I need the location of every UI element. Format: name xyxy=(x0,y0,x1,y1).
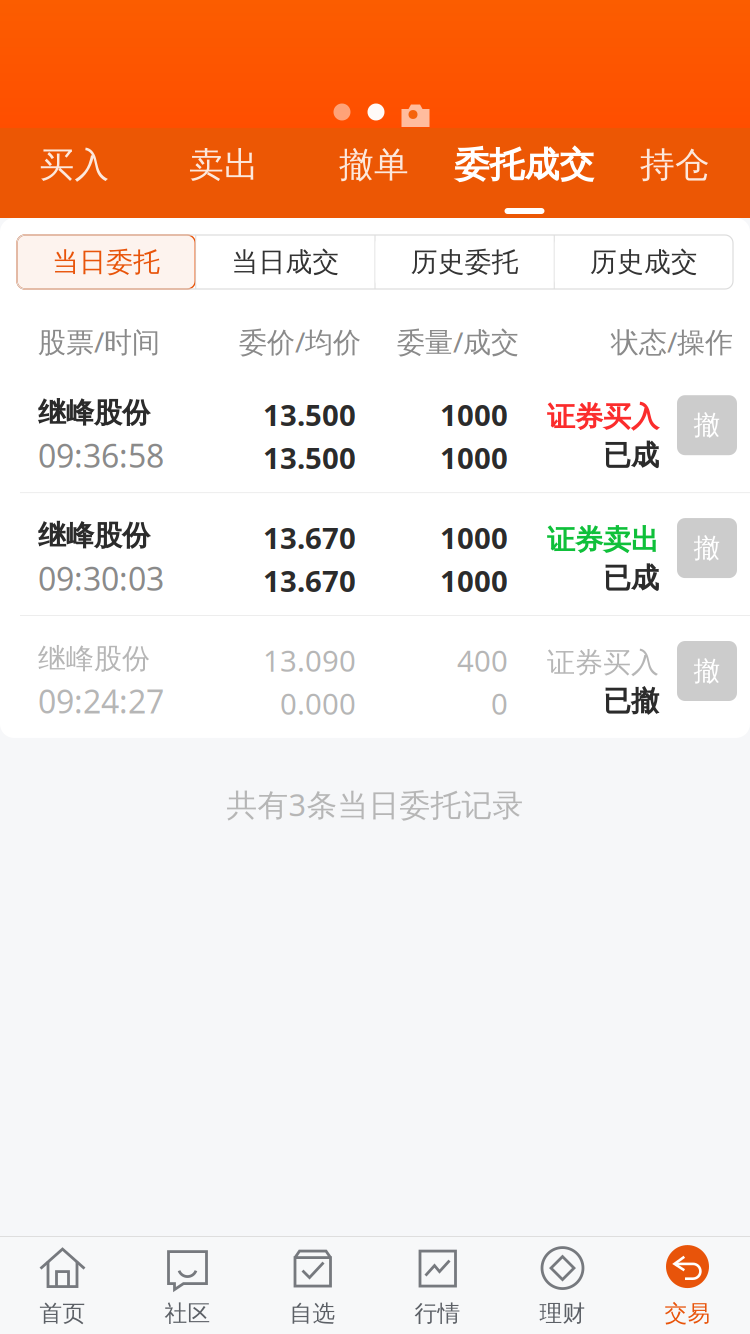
staticText: 13.500 xyxy=(263,395,356,434)
button[interactable]: 首页 xyxy=(0,1237,125,1334)
staticText: 09:36:58 xyxy=(38,434,164,477)
staticText: 撤 xyxy=(693,655,720,687)
staticText: 1000 xyxy=(440,438,508,477)
staticText: 0 xyxy=(491,684,508,723)
staticText: 证券买入 xyxy=(547,646,659,680)
button[interactable]: 撤单 xyxy=(299,128,449,218)
staticText: 继峰股份 xyxy=(38,396,150,430)
staticText: 社区 xyxy=(164,1300,210,1327)
staticText: 13.670 xyxy=(263,518,356,557)
staticText: 委量/成交 xyxy=(397,323,519,360)
button[interactable]: 理财 xyxy=(500,1237,625,1334)
staticText: 首页 xyxy=(39,1300,85,1327)
staticText: 撤 xyxy=(693,409,720,442)
staticText: 委托成交 xyxy=(454,144,594,186)
staticText: 已成 xyxy=(603,561,659,595)
staticText: 1000 xyxy=(440,518,508,557)
staticText: 400 xyxy=(457,641,508,680)
button[interactable]: 卖出 xyxy=(149,128,299,218)
staticText: 13.090 xyxy=(263,641,356,680)
staticText: 持仓 xyxy=(640,144,710,186)
button[interactable]: 撤 xyxy=(677,395,737,455)
staticText: 1000 xyxy=(440,561,508,600)
staticText: 历史委托 xyxy=(411,246,519,278)
staticText: 交易 xyxy=(664,1300,710,1327)
staticText: 证券卖出 xyxy=(547,523,659,557)
button[interactable]: 历史成交 xyxy=(555,235,733,289)
button[interactable]: 历史委托 xyxy=(375,235,554,289)
button[interactable]: 当日委托 xyxy=(17,235,195,289)
button[interactable]: 行情 xyxy=(375,1237,500,1334)
button[interactable]: 买入 xyxy=(0,128,149,218)
staticText: 09:24:27 xyxy=(38,680,164,722)
staticText: 行情 xyxy=(414,1300,460,1327)
staticText: 卖出 xyxy=(189,144,259,186)
staticText: 证券买入 xyxy=(547,400,659,434)
staticText: 13.500 xyxy=(263,438,356,477)
staticText: 继峰股份 xyxy=(38,519,150,553)
staticText: 状态/操作 xyxy=(611,323,733,360)
staticText: 1000 xyxy=(440,395,508,434)
staticText: 理财 xyxy=(539,1300,585,1327)
button[interactable]: 社区 xyxy=(125,1237,250,1334)
staticText: 0.000 xyxy=(280,684,356,723)
staticText: 委价/均价 xyxy=(239,323,361,360)
button[interactable]: 持仓 xyxy=(600,128,750,218)
staticText: 共有3条当日委托记录 xyxy=(226,784,523,825)
staticText: 自选 xyxy=(289,1300,335,1327)
staticText: 继峰股份 xyxy=(38,641,150,676)
button[interactable]: 撤 xyxy=(677,518,737,578)
staticText: 已成 xyxy=(603,438,659,472)
button[interactable]: 撤 xyxy=(677,641,737,701)
button[interactable]: 当日成交 xyxy=(196,235,374,289)
button[interactable]: 交易 xyxy=(625,1237,750,1334)
staticText: 历史成交 xyxy=(590,246,698,278)
staticText: 股票/时间 xyxy=(38,323,160,360)
staticText: 09:30:03 xyxy=(38,557,164,599)
staticText: 买入 xyxy=(39,144,109,186)
staticText: 撤单 xyxy=(339,144,409,186)
staticText: 当日成交 xyxy=(231,246,339,278)
button[interactable]: 委托成交 xyxy=(449,128,600,218)
staticText: 13.670 xyxy=(263,561,356,600)
staticText: 当日委托 xyxy=(52,246,160,278)
staticText: 撤 xyxy=(693,532,720,564)
button[interactable]: 自选 xyxy=(250,1237,375,1334)
staticText: 已撤 xyxy=(603,684,659,718)
